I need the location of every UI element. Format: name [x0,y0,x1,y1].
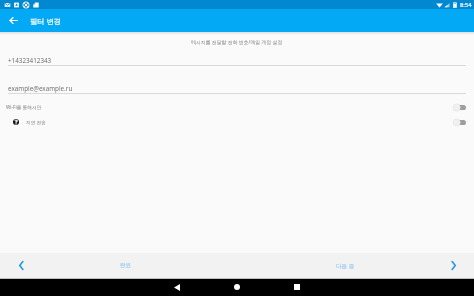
staticText: 다음 중 [336,262,355,270]
button[interactable]: 지연 전송 [0,115,474,129]
button[interactable]: Back [147,278,207,296]
button[interactable]: Previous [0,253,42,278]
button[interactable]: Back [0,9,26,32]
staticText: Wi-Fi를 통해서만 [6,104,42,110]
button[interactable]: +14323412343 [8,56,466,66]
staticText: +14323412343 [8,56,52,65]
staticText: example@example.ru [8,84,73,93]
button[interactable]: 완료 [84,253,167,278]
button[interactable]: Wi-Fi를 통해서만 [0,100,474,114]
button[interactable]: 다음 중 [304,253,386,278]
button[interactable]: example@example.ru [8,84,466,94]
staticText: 완료 [120,262,132,269]
staticText: 8:54 [460,1,472,9]
button[interactable]: Recents [267,278,327,296]
staticText: 필터 변경 [30,16,62,26]
button[interactable]: Home [207,278,267,296]
staticText: 지연 전송 [26,119,46,125]
staticText: 메시지를 전달할 전화 번호/메일 계정 설정 [191,39,283,46]
button[interactable]: Next [432,253,474,278]
